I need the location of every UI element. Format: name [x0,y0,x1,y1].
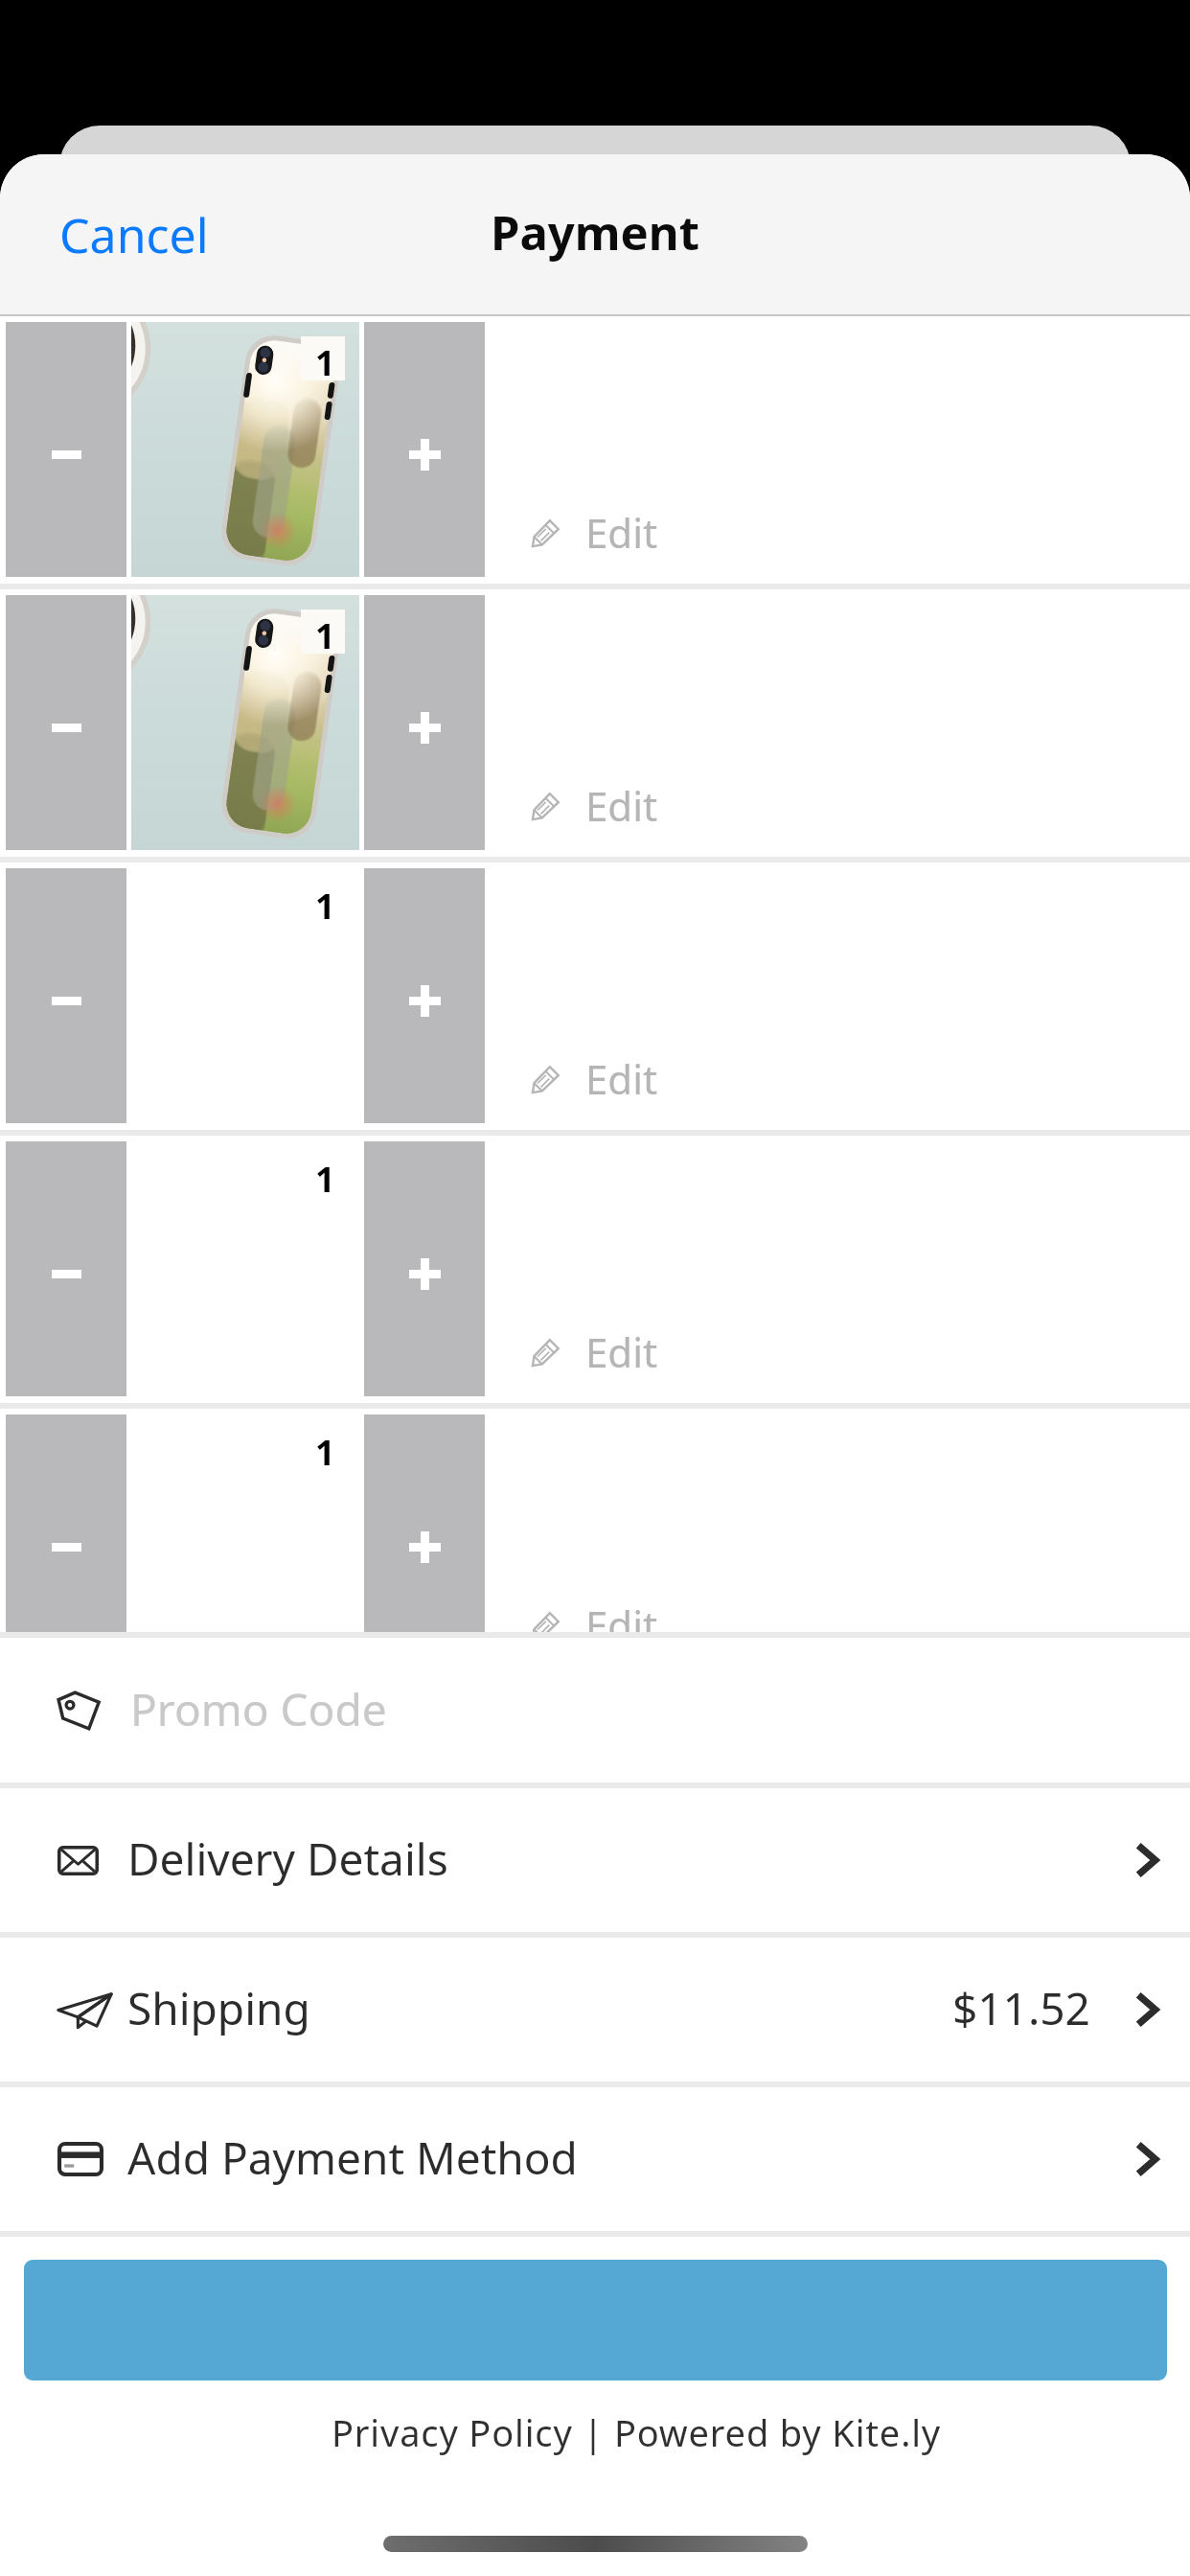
button[interactable]: Increase quantity [364,595,485,850]
button[interactable]: Edit [512,765,677,846]
staticText: Payment [491,200,699,264]
button[interactable]: Increase quantity [364,1414,485,1638]
button[interactable]: Increase quantity [364,868,485,1123]
staticText: Edit [585,1598,658,1638]
button[interactable]: Decrease quantity [6,1141,126,1396]
staticText: Edit [585,1324,658,1379]
staticText: Promo Code [130,1679,387,1739]
staticText: 1 [315,1429,335,1476]
button[interactable]: Edit [512,1584,677,1638]
staticText: Cancel [59,202,209,267]
staticText: 1 [315,1156,335,1203]
staticText: 1 [315,883,335,930]
button[interactable]: Edit [512,1311,677,1392]
staticText: Edit [585,1051,658,1106]
button[interactable]: Edit [512,1038,677,1119]
button[interactable]: Increase quantity [364,1141,485,1396]
button[interactable]: Promo Code [0,1638,1190,1782]
button[interactable]: Add Payment Method [0,2087,1190,2231]
staticText: Edit [585,505,658,560]
staticText: Edit [585,778,658,833]
button[interactable]: Decrease quantity [0,1136,1190,1403]
button[interactable]: Decrease quantity [6,322,126,577]
button[interactable]: Shipping [0,1938,1190,2081]
staticText: Add Payment Method [127,2127,578,2188]
button[interactable]: Decrease quantity [6,595,126,850]
staticText: $11.52 [952,1978,1090,2038]
button[interactable]: Decrease quantity [6,1414,126,1638]
staticText: Delivery Details [127,1828,448,1889]
button[interactable]: Increase quantity [364,322,485,577]
button[interactable]: Decrease quantity [0,316,1190,584]
button[interactable]: Decrease quantity [0,589,1190,857]
staticText: 1 [315,612,335,659]
staticText: Shipping [127,1978,310,2038]
button[interactable]: Delivery Details [0,1788,1190,1932]
button[interactable]: Cancel [38,191,230,279]
button[interactable]: Decrease quantity [0,1409,1190,1638]
button[interactable]: Privacy Policy | Powered by Kite.ly [41,2407,1190,2457]
button[interactable]: Decrease quantity [0,862,1190,1130]
button[interactable]: Edit [512,492,677,573]
button[interactable]: Decrease quantity [6,868,126,1123]
staticText: 1 [315,339,335,386]
